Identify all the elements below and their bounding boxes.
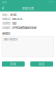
staticText: 家中有急事需请假两天处理	[12, 26, 36, 29]
staticText: 申请人：	[2, 13, 10, 16]
staticText: 请假详情	[22, 6, 34, 10]
staticText: 同意	[10, 62, 16, 66]
staticText: 张小明	[10, 13, 16, 16]
staticText: 审批意见	[2, 31, 10, 35]
staticText: 申请时间：	[2, 17, 12, 21]
staticText: 9:41	[2, 1, 6, 4]
staticText: 2024-01-15	[12, 17, 22, 21]
button[interactable]: Back	[0, 4, 8, 12]
button[interactable]: 驳回	[30, 61, 53, 67]
button[interactable]: 同意	[2, 61, 25, 67]
staticText: ▪▪▪	[48, 1, 54, 4]
staticText: 申请事由：	[2, 26, 12, 29]
staticText: 驳回	[39, 62, 45, 66]
staticText: 年假	[12, 21, 16, 25]
staticText: 申请类型：	[2, 21, 12, 25]
staticText: 请输入审批意见	[3, 37, 17, 41]
